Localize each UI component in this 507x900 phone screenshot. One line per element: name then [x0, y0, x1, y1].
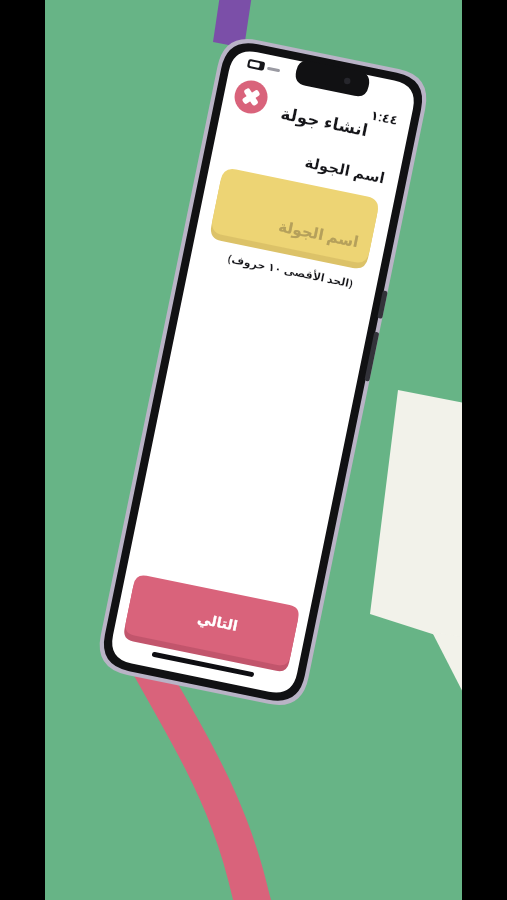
button[interactable] [168, 180, 436, 242]
button[interactable]: Close [190, 72, 226, 108]
button[interactable] [62, 572, 350, 646]
